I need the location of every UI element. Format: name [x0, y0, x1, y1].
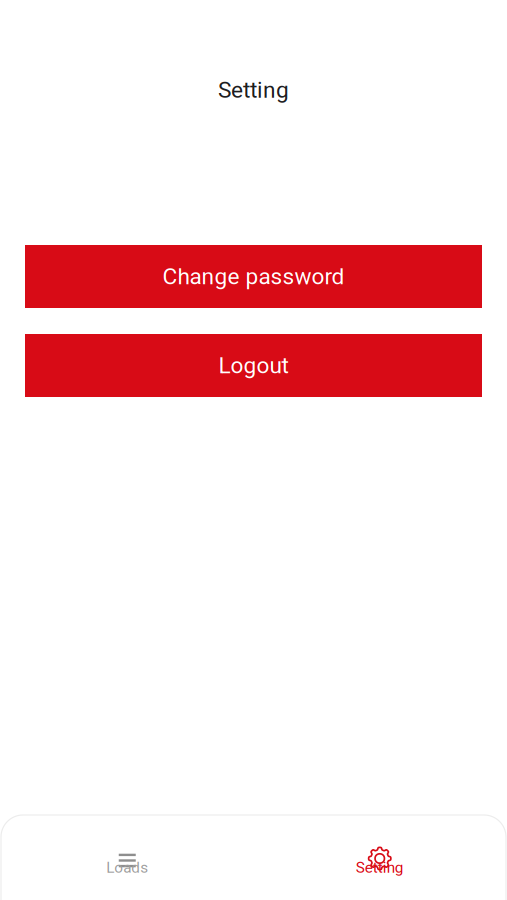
button[interactable]: Setting: [253, 815, 506, 900]
staticText: Loads: [106, 858, 148, 876]
staticText: Setting: [356, 858, 404, 876]
button[interactable]: Loads: [1, 815, 253, 900]
staticText: Logout: [218, 352, 288, 379]
button[interactable]: Logout: [25, 334, 482, 397]
button[interactable]: Change password: [25, 245, 482, 308]
staticText: Setting: [218, 77, 289, 103]
staticText: Change password: [162, 263, 344, 290]
